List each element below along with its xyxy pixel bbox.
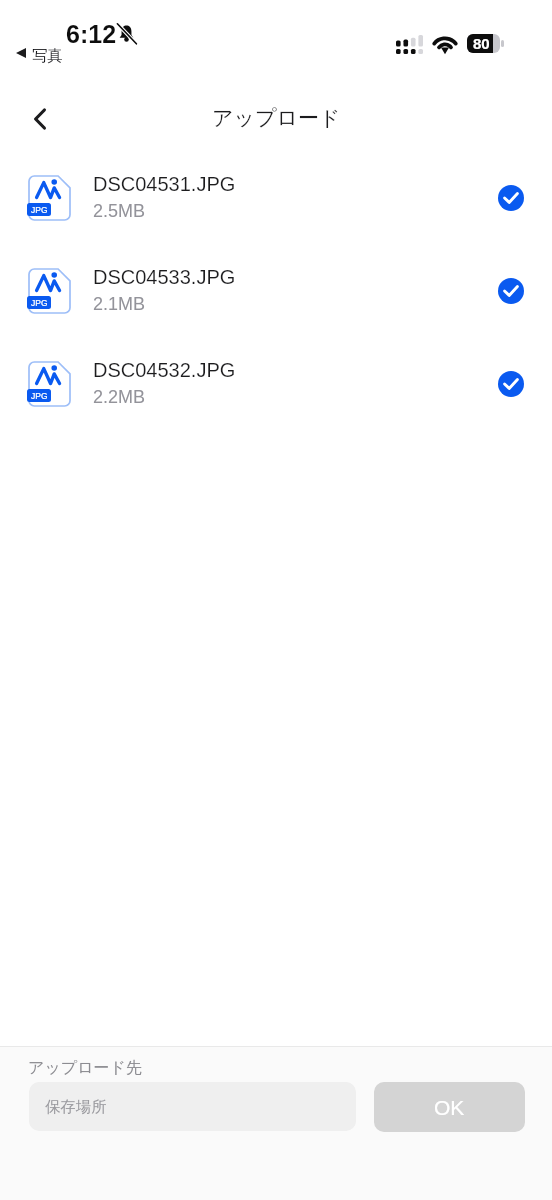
staticText: 2.2MB [93,387,146,407]
button[interactable]: Selected [498,371,524,397]
staticText: 写真 [32,46,63,66]
staticText: 2.5MB [93,201,146,221]
staticText: JPG [31,205,48,214]
staticText: 80 [473,35,490,52]
button[interactable]: Back [20,99,60,139]
button[interactable]: JPG [0,244,552,337]
staticText: DSC04532.JPG [93,359,236,381]
button[interactable]: JPG [0,151,552,244]
button[interactable]: JPG [0,337,552,430]
staticText: DSC04533.JPG [93,266,236,288]
staticText: アップロード [212,105,341,131]
button[interactable]: OK [374,1082,525,1132]
staticText: JPG [31,298,48,307]
button[interactable]: Selected [498,278,524,304]
staticText: OK [434,1096,465,1119]
staticText: DSC04531.JPG [93,173,236,195]
staticText: 2.1MB [93,294,146,314]
staticText: アップロード先 [28,1058,142,1078]
button[interactable]: Selected [498,185,524,211]
button[interactable]: 保存場所 [29,1082,356,1131]
staticText: 保存場所 [45,1097,107,1117]
staticText: 6:12 [66,20,117,48]
staticText: JPG [31,391,48,400]
